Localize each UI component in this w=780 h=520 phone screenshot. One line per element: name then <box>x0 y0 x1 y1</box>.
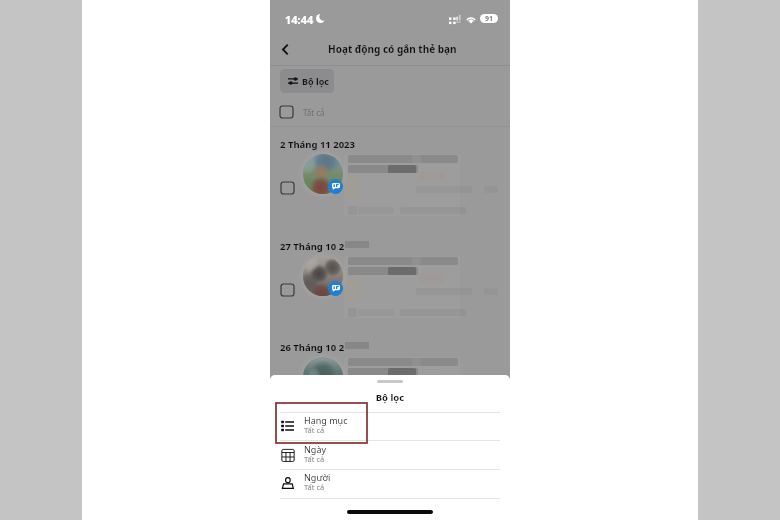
staticText: 91 <box>485 14 494 23</box>
button[interactable]: Ngày <box>270 441 510 469</box>
staticText: Bộ lọc <box>302 75 329 87</box>
button[interactable]: Tất cả <box>270 101 510 123</box>
staticText: Tất cả <box>304 482 325 492</box>
button[interactable]: Select activity <box>281 182 294 194</box>
button[interactable]: Tagged activity on 26 Tháng 10 2 <box>270 352 510 430</box>
staticText: Bộ lọc <box>270 391 510 404</box>
button[interactable]: Người <box>270 469 510 497</box>
button[interactable]: Bộ lọc <box>280 69 334 93</box>
staticText: Người <box>304 471 331 483</box>
button[interactable]: Select activity <box>281 284 294 296</box>
button[interactable]: Hạng mục <box>270 412 510 440</box>
button[interactable]: Tagged activity on 2 Tháng 11 2023 <box>270 149 510 227</box>
staticText: Hạng mục <box>304 414 348 426</box>
staticText: 26 Tháng 10 2 <box>280 341 345 354</box>
staticText: 2 Tháng 11 2023 <box>280 138 355 151</box>
staticText: Tất cả <box>304 454 325 464</box>
staticText: Hoạt động có gắn thẻ bạn <box>328 42 457 56</box>
staticText: Tất cả <box>304 425 325 435</box>
staticText: Ngày <box>304 443 327 455</box>
staticText: 27 Tháng 10 2 <box>280 240 345 253</box>
staticText: 14:44 <box>285 12 314 27</box>
staticText: Tất cả <box>303 107 325 118</box>
button[interactable]: Tagged activity on 27 Tháng 10 2 <box>270 251 510 329</box>
button[interactable]: Back <box>273 37 297 61</box>
